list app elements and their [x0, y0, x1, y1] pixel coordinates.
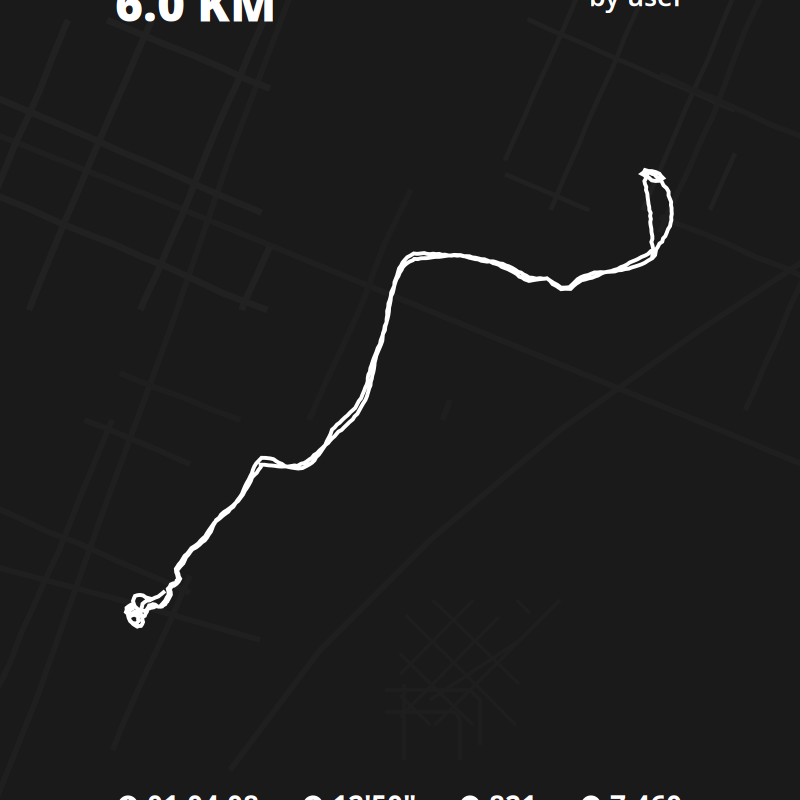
staticText: 12'50": [332, 787, 416, 800]
staticText: by user: [589, 0, 685, 14]
button[interactable]: Steps: [581, 787, 682, 800]
staticText: 6.0 KM: [115, 0, 276, 35]
button[interactable]: by user: [589, 0, 685, 14]
button[interactable]: Average pace: [303, 787, 416, 800]
staticText: 7,460: [610, 787, 682, 800]
staticText: 821: [489, 787, 537, 800]
button[interactable]: Elapsed time: [118, 787, 259, 800]
button[interactable]: 6.0 KM: [115, 0, 276, 35]
staticText: 01:04:08: [147, 787, 259, 800]
button[interactable]: Calories: [460, 787, 537, 800]
